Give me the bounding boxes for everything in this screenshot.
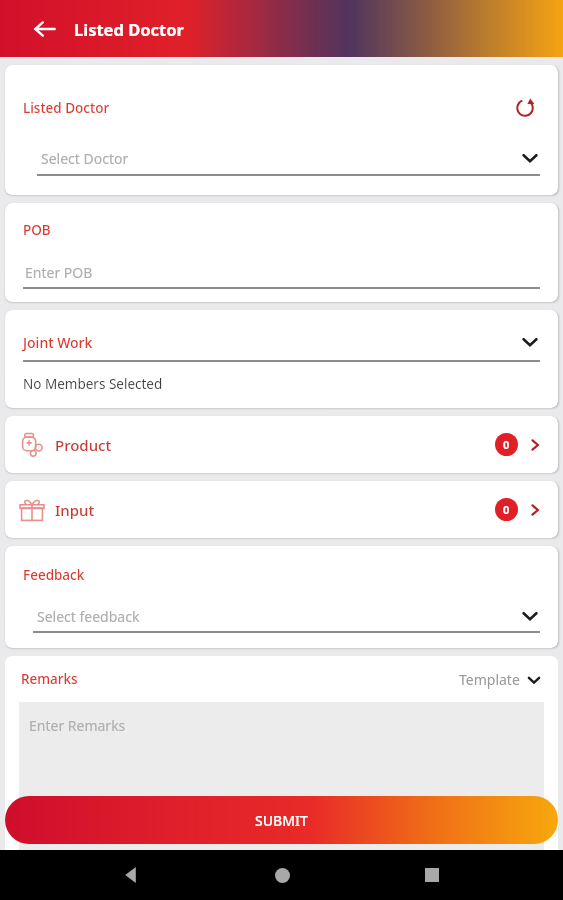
staticText: No Members Selected	[23, 375, 163, 393]
staticText: SUBMIT	[255, 811, 308, 830]
staticText: POB	[23, 221, 51, 239]
staticText: Remarks	[21, 670, 78, 688]
staticText: Enter POB	[25, 263, 93, 282]
staticText: Select Doctor	[41, 149, 129, 168]
button[interactable]: Select Doctor	[23, 145, 540, 171]
button[interactable]: Recent apps	[412, 855, 452, 895]
staticText: 0	[503, 502, 510, 517]
button[interactable]: Back	[111, 855, 151, 895]
staticText: Listed Doctor	[23, 99, 110, 117]
staticText: Joint Work	[23, 333, 93, 352]
staticText: Listed Doctor	[74, 18, 184, 40]
staticText: 0	[503, 437, 510, 452]
staticText: Product	[55, 435, 112, 455]
button[interactable]: Enter Remarks	[19, 702, 544, 850]
button[interactable]: Select feedback	[23, 604, 540, 628]
staticText: Feedback	[23, 566, 85, 584]
button[interactable]: Product	[5, 416, 558, 473]
button[interactable]: Joint Work	[23, 330, 540, 354]
staticText: Select feedback	[37, 607, 140, 626]
staticText: Input	[55, 500, 95, 520]
button[interactable]: Enter POB	[23, 261, 540, 283]
button[interactable]: Back	[28, 12, 62, 46]
button[interactable]: Input	[5, 481, 558, 538]
other: Input	[19, 497, 45, 523]
staticText: Template	[459, 670, 520, 689]
staticText: Enter Remarks	[29, 716, 126, 735]
button[interactable]: Refresh	[510, 93, 540, 123]
button[interactable]: Home	[262, 855, 302, 895]
button[interactable]: SUBMIT	[5, 796, 558, 844]
button[interactable]: Template	[459, 670, 542, 689]
other: Product	[19, 432, 45, 458]
